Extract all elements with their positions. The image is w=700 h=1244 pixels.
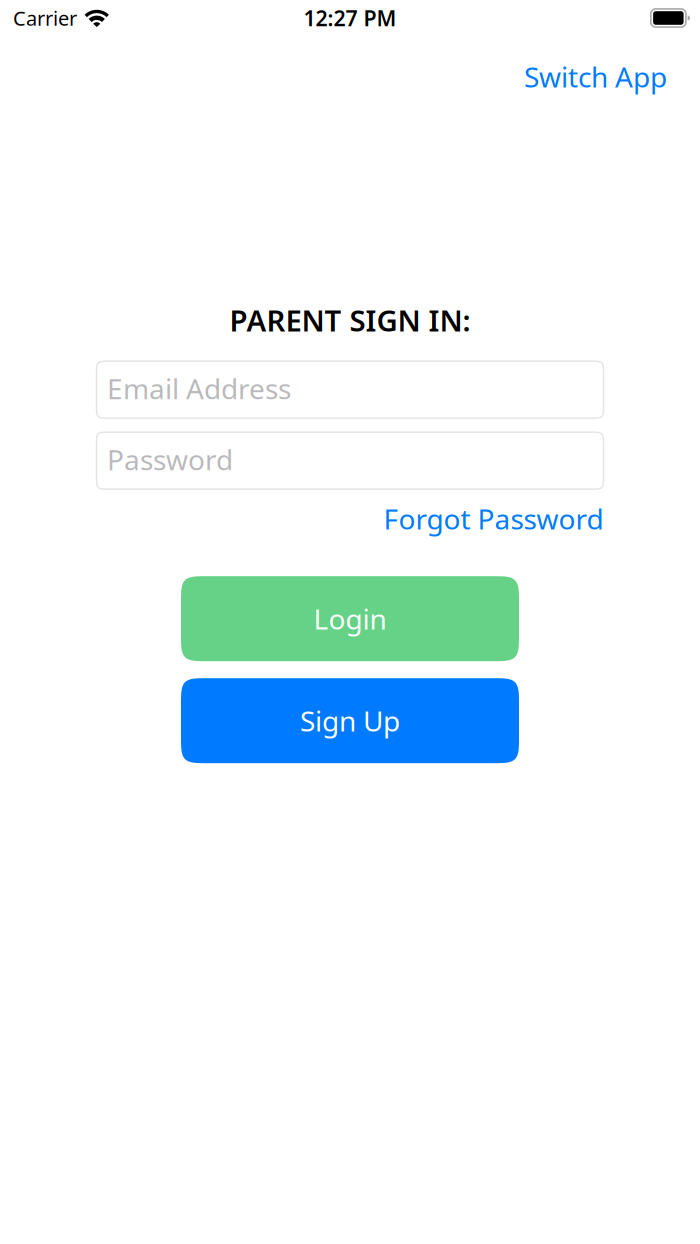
button[interactable]: Login bbox=[181, 576, 519, 661]
staticText: Password bbox=[107, 441, 233, 478]
button[interactable]: Forgot Password bbox=[383, 504, 603, 534]
button[interactable]: Password bbox=[96, 432, 603, 489]
staticText: Carrier bbox=[13, 5, 77, 31]
button[interactable]: Switch App bbox=[516, 52, 675, 101]
staticText: PARENT SIGN IN: bbox=[229, 301, 470, 340]
staticText: Login bbox=[313, 600, 386, 637]
button[interactable]: Sign Up bbox=[181, 678, 519, 763]
button[interactable]: Email Address bbox=[96, 361, 603, 418]
staticText: Email Address bbox=[107, 370, 291, 407]
staticText: Sign Up bbox=[300, 702, 400, 739]
staticText: Forgot Password bbox=[383, 500, 603, 537]
staticText: 12:27 PM bbox=[303, 4, 396, 32]
staticText: Switch App bbox=[524, 58, 667, 95]
